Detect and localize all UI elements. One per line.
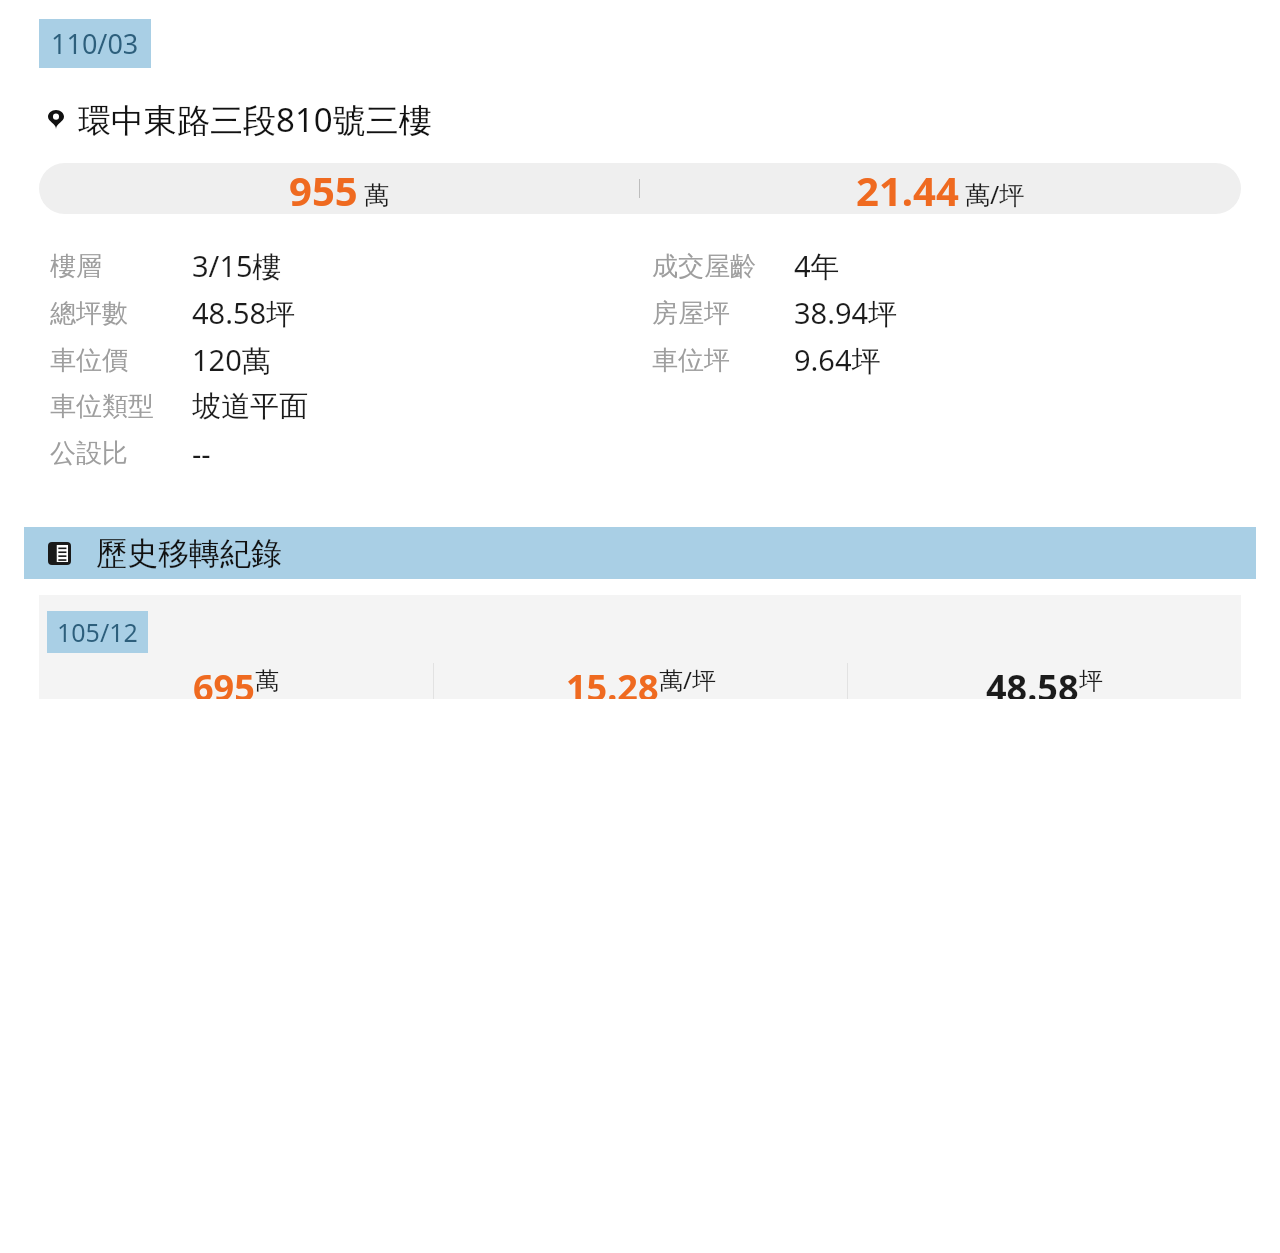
staticText: 3/15樓 [192,246,282,286]
staticText: 車位坪 [652,344,730,377]
staticText: 坡道平面 [192,388,308,425]
staticText: 房屋坪 [652,297,730,330]
other: Location [48,110,64,129]
staticText: 萬/坪 [659,663,716,696]
button[interactable]: Location [48,97,432,142]
staticText: -- [192,434,211,473]
staticText: 總坪數 [50,297,128,330]
staticText: 15.28 [566,663,659,699]
staticText: 955 [289,163,358,214]
staticText: 公設比 [50,437,128,470]
staticText: 21.44 [856,163,959,214]
staticText: 車位價 [50,344,128,377]
staticText: 萬 [364,180,389,211]
staticText: 110/03 [51,25,139,62]
staticText: 38.94坪 [794,293,898,333]
button[interactable]: 955 [39,163,1241,214]
staticText: 48.58 [986,663,1079,699]
staticText: 環中東路三段810號三樓 [78,97,432,142]
staticText: 車位類型 [50,390,154,423]
staticText: 48.58坪 [192,293,296,333]
button[interactable]: 歷史移轉紀錄 [24,527,1256,579]
staticText: 120萬 [192,340,271,380]
staticText: 萬 [255,666,279,696]
staticText: 695 [193,663,255,699]
staticText: 成交屋齡 [652,250,756,283]
staticText: 樓層 [50,250,102,283]
staticText: 坪 [1079,666,1103,696]
button[interactable]: 105/12 [39,595,1241,699]
staticText: 歷史移轉紀錄 [96,534,282,573]
staticText: 105/12 [57,615,138,649]
staticText: 9.64坪 [794,340,881,380]
staticText: 萬/坪 [965,177,1025,211]
staticText: 4年 [794,246,840,286]
